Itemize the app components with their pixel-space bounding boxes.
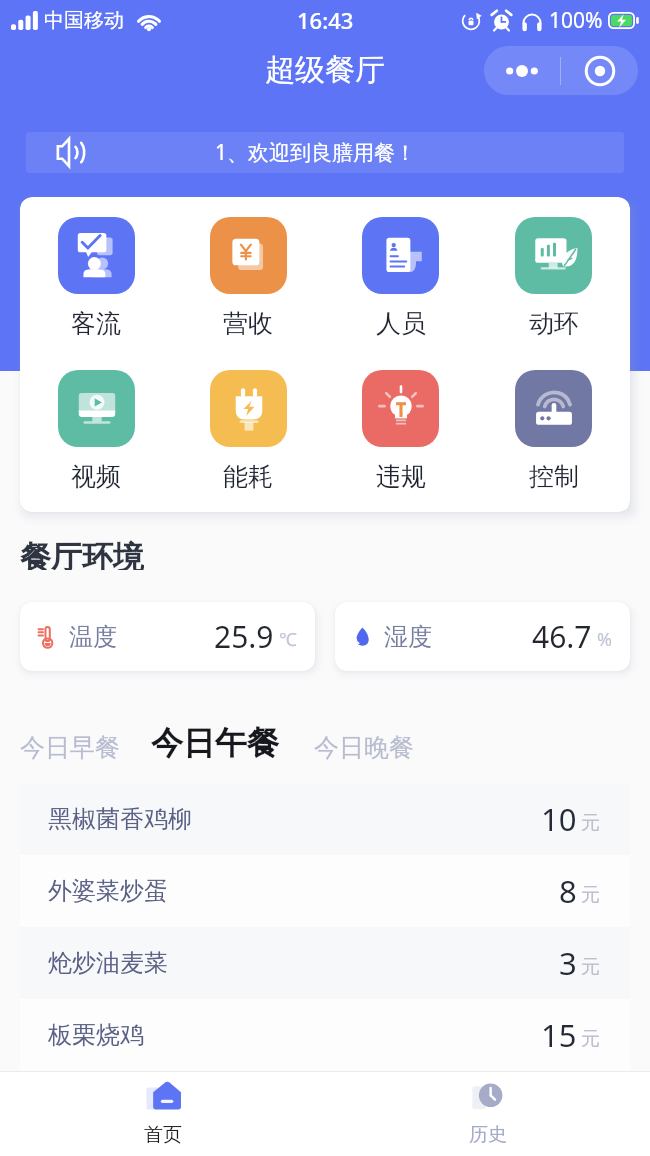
button[interactable]: 客流 — [20, 217, 172, 339]
staticText: 元 — [581, 811, 600, 835]
staticText: 今日午餐 — [151, 723, 279, 763]
button[interactable]: 今日晚餐 — [314, 732, 414, 763]
staticText: % — [597, 627, 612, 652]
button[interactable]: 今日早餐 — [20, 732, 120, 763]
staticText: 炝炒油麦菜 — [48, 948, 168, 978]
staticText: 违规 — [376, 461, 426, 492]
staticText: 3 — [559, 942, 577, 984]
button[interactable]: 炝炒油麦菜 — [20, 927, 630, 999]
staticText: 餐厅环境 — [20, 538, 144, 570]
staticText: 元 — [581, 955, 600, 979]
button[interactable]: 外婆菜炒蛋 — [20, 855, 630, 927]
staticText: 控制 — [529, 461, 579, 492]
button[interactable]: 视频 — [20, 370, 172, 492]
staticText: 元 — [581, 1027, 600, 1051]
staticText: 16:43 — [297, 5, 354, 35]
staticText: 外婆菜炒蛋 — [48, 876, 168, 906]
button[interactable]: 人员 — [324, 217, 477, 339]
staticText: 板栗烧鸡 — [48, 1020, 144, 1050]
button[interactable]: 首页 — [0, 1072, 325, 1156]
staticText: 湿度 — [384, 622, 432, 652]
button[interactable]: 清炒时蔬 — [20, 1071, 630, 1143]
button[interactable]: 营收 — [172, 217, 324, 339]
staticText: 超级餐厅 — [265, 51, 385, 89]
staticText: 10 — [541, 798, 577, 840]
staticText: 8 — [559, 870, 577, 912]
button[interactable]: 能耗 — [172, 370, 324, 492]
staticText: 15 — [541, 1014, 577, 1056]
staticText: 元 — [581, 883, 600, 907]
staticText: 营收 — [223, 308, 273, 339]
staticText: 历史 — [469, 1123, 507, 1147]
staticText: 温度 — [69, 622, 117, 652]
button[interactable]: 历史 — [325, 1072, 650, 1156]
staticText: 首页 — [144, 1123, 182, 1147]
staticText: 100% — [549, 6, 603, 35]
staticText: ℃ — [279, 627, 297, 652]
staticText: 客流 — [71, 308, 121, 339]
staticText: 46.7 — [532, 616, 592, 657]
staticText: 25.9 — [214, 616, 274, 657]
button[interactable]: 今日午餐 — [151, 723, 279, 763]
staticText: 能耗 — [223, 461, 273, 492]
staticText: 黑椒菌香鸡柳 — [48, 804, 192, 834]
staticText: 人员 — [376, 308, 426, 339]
button[interactable]: 1、欢迎到良膳用餐！ — [26, 132, 624, 173]
staticText: 动环 — [529, 308, 579, 339]
staticText: 今日晚餐 — [314, 732, 414, 763]
button[interactable]: 温度 — [20, 602, 315, 671]
staticText: 中国移动 — [44, 8, 124, 33]
button[interactable]: 黑椒菌香鸡柳 — [20, 783, 630, 855]
staticText: 1、欢迎到良膳用餐！ — [215, 138, 417, 167]
button[interactable]: More options — [484, 46, 560, 95]
button[interactable]: 违规 — [324, 370, 477, 492]
button[interactable]: 动环 — [477, 217, 630, 339]
button[interactable]: 湿度 — [335, 602, 630, 671]
staticText: 视频 — [71, 461, 121, 492]
button[interactable]: 控制 — [477, 370, 630, 492]
button[interactable]: Close mini program — [561, 46, 638, 95]
button[interactable]: 板栗烧鸡 — [20, 999, 630, 1071]
staticText: 今日早餐 — [20, 732, 120, 763]
